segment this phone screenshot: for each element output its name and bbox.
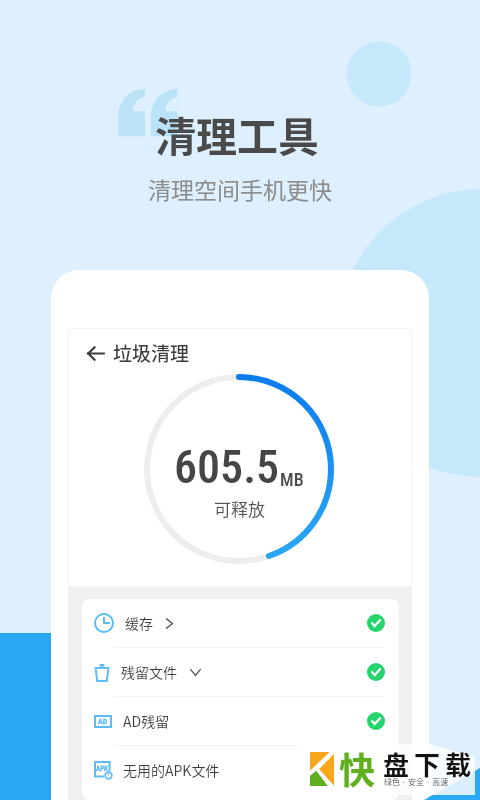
staticText: 绿色 · 安全 · 高速 <box>384 776 449 788</box>
staticText: 无用的APK文件 <box>123 760 220 780</box>
button[interactable]: 残留文件 <box>82 648 399 696</box>
staticText: MB <box>280 469 304 490</box>
button[interactable]: 缓存 <box>82 599 399 647</box>
staticText: 清理空间手机更快 <box>148 172 332 205</box>
staticText: 盘下载 <box>383 745 477 783</box>
staticText: AD <box>98 717 108 726</box>
button[interactable]: AD <box>82 697 399 745</box>
button[interactable]: APK <box>82 746 399 794</box>
staticText: 缓存 <box>125 613 153 633</box>
staticText: 快 <box>339 742 376 793</box>
button[interactable]: Back <box>87 339 190 367</box>
staticText: 清理工具 <box>155 104 319 163</box>
other: Back <box>87 346 104 361</box>
staticText: 残留文件 <box>121 662 177 682</box>
staticText: AD残留 <box>123 711 170 731</box>
staticText: APK <box>96 765 108 773</box>
staticText: 可释放 <box>214 496 265 521</box>
staticText: 605.5 <box>174 440 280 494</box>
staticText: 垃圾清理 <box>113 339 190 367</box>
